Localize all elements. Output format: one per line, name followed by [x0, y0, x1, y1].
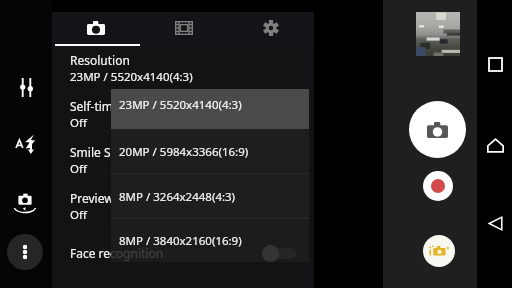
button[interactable]: Self-timer	[52, 92, 314, 138]
button[interactable]: Auto flash	[6, 124, 46, 164]
staticText: Off	[70, 161, 87, 177]
button[interactable]: Take photo	[409, 101, 466, 158]
button[interactable]: Resolution	[52, 46, 314, 92]
button[interactable]: Settings	[227, 12, 314, 44]
staticText: Self-timer	[70, 98, 125, 114]
button[interactable]: More options	[7, 234, 43, 270]
button[interactable]: Video mode	[140, 12, 227, 44]
staticText: Off	[70, 207, 87, 223]
button[interactable]: Preview	[52, 184, 314, 230]
button[interactable]: Gallery	[416, 12, 460, 56]
button[interactable]: Camera modes	[423, 235, 455, 267]
staticText: 20MP / 5984x3366(16:9)	[119, 144, 249, 160]
button[interactable]: 23MP / 5520x4140(4:3)	[111, 89, 309, 129]
staticText: Off	[70, 115, 87, 131]
staticText: Smile Shutter	[70, 144, 146, 160]
button[interactable]: Smile Shutter	[52, 138, 314, 184]
staticText: 8MP / 3264x2448(4:3)	[119, 189, 236, 205]
button[interactable]: Switch camera	[5, 182, 45, 222]
button[interactable]: Recents	[480, 49, 510, 79]
staticText: Face recognition	[70, 245, 164, 261]
staticText: 8MP / 3840x2160(16:9)	[119, 233, 242, 249]
button[interactable]: Record video	[423, 171, 453, 201]
button[interactable]: 8MP / 3840x2160(16:9)	[111, 219, 309, 262]
button[interactable]: Photo mode	[52, 12, 140, 44]
button[interactable]: Settings sliders	[6, 67, 46, 107]
button[interactable]: Back	[480, 208, 510, 238]
staticText: 23MP / 5520x4140(4:3)	[119, 97, 242, 113]
staticText: 23MP / 5520x4140(4:3)	[70, 69, 193, 85]
staticText: Preview	[70, 190, 114, 206]
button[interactable]: 20MP / 5984x3366(16:9)	[111, 129, 309, 174]
button[interactable]: 8MP / 3264x2448(4:3)	[111, 174, 309, 219]
button[interactable]: Face recognition	[52, 230, 314, 276]
button[interactable]: Home	[480, 130, 510, 160]
staticText: Resolution	[70, 52, 130, 68]
